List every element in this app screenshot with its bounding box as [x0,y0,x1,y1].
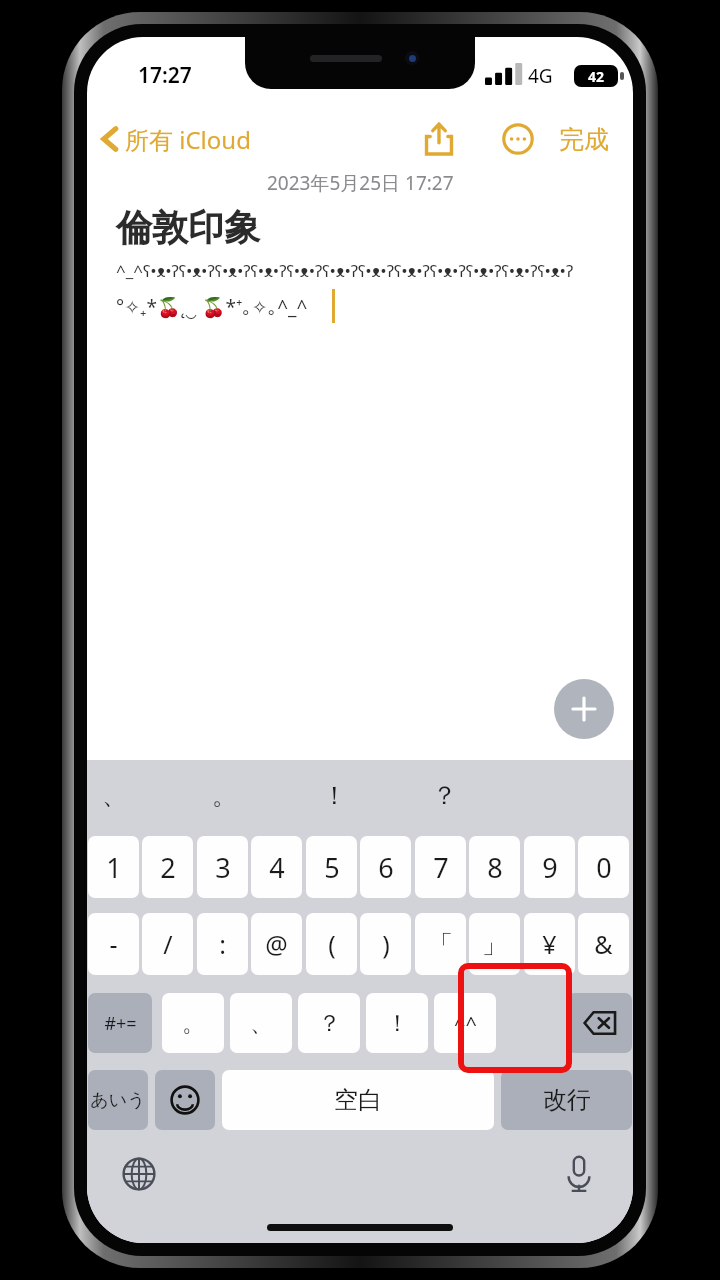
staticText: 倫敦印象 [116,205,260,250]
button[interactable]: & [578,913,629,975]
button[interactable]: 「 [415,913,466,975]
staticText: 2023年5月25日 17:27 [267,170,454,196]
button[interactable]: 改行 [501,1070,632,1130]
staticText: 6 [378,849,394,886]
button[interactable]: 7 [415,836,466,898]
staticText: ！ [322,780,347,811]
staticText: 4 [269,849,285,886]
staticText: 。 [212,780,237,811]
staticText: @ [265,927,288,961]
staticText: ¥ [542,927,557,961]
button[interactable]: : [197,913,248,975]
button[interactable]: ？ [298,993,360,1053]
button[interactable]: 0 [578,836,629,898]
staticText: & [594,927,613,961]
button[interactable]: 3 [197,836,248,898]
staticText: 5 [324,849,340,886]
button[interactable]: ！ [366,993,428,1053]
staticText: 0 [596,849,612,886]
button[interactable]: 1 [88,836,139,898]
staticText: 9 [542,849,558,886]
button[interactable]: ^^ [434,993,496,1053]
button[interactable]: ？ [417,760,472,830]
staticText: 2 [160,849,176,886]
button[interactable]: 9 [524,836,575,898]
staticText: 」 [482,929,507,960]
button[interactable]: ) [360,913,411,975]
button[interactable]: 4 [251,836,302,898]
staticText: - [109,927,118,961]
button[interactable]: 刪除 [568,993,632,1053]
button[interactable]: ( [306,913,357,975]
staticText: : [219,927,226,961]
button[interactable]: #+= [88,993,152,1053]
button[interactable]: 空白 [222,1070,494,1130]
staticText: °✧₊*🍒˛‿ 🍒*⁺｡✧｡^_^ [116,294,586,320]
staticText: 「 [428,929,453,960]
button[interactable]: 。 [197,760,252,830]
button[interactable]: 切換鍵盤 [113,1148,165,1200]
staticText: 完成 [559,124,609,155]
staticText: 1 [106,849,122,886]
staticText: 改行 [543,1085,591,1115]
button[interactable]: 分享 [417,117,461,161]
button[interactable]: 5 [306,836,357,898]
button[interactable]: 、 [87,760,142,830]
button[interactable]: あいう [88,1070,148,1130]
staticText: 。 [182,1009,205,1038]
staticText: 、 [250,1009,273,1038]
staticText: ？ [432,780,457,811]
button[interactable]: 表情符號 [155,1070,215,1130]
staticText: ^_^ʕ•ᴥ•ʔʕ•ᴥ•ʔʕ•ᴥ•ʔʕ•ᴥ•ʔʕ•ᴥ•ʔʕ•ᴥ•ʔʕ•ᴥ•ʔʕ•… [116,259,586,282]
staticText: 、 [102,780,127,811]
button[interactable]: / [142,913,193,975]
staticText: ( [328,927,336,961]
button[interactable]: 2 [142,836,193,898]
button[interactable]: 語音輸入 [553,1148,605,1200]
button[interactable]: 更多 [496,117,540,161]
staticText: ？ [318,1009,341,1038]
staticText: 3 [215,849,231,886]
staticText: 4G [528,63,553,89]
button[interactable]: 、 [230,993,292,1053]
staticText: あいう [90,1089,146,1112]
button[interactable]: ¥ [524,913,575,975]
staticText: 7 [433,849,449,886]
staticText: 42 [588,67,605,86]
staticText: #+= [104,1011,137,1036]
button[interactable]: 8 [469,836,520,898]
button[interactable]: 」 [469,913,520,975]
button[interactable]: - [88,913,139,975]
button[interactable]: @ [251,913,302,975]
button[interactable]: 完成 [559,117,609,161]
button[interactable]: 新增 [554,679,614,739]
button[interactable]: 所有 iCloud [97,115,251,163]
staticText: 空白 [334,1085,382,1115]
button[interactable]: ！ [307,760,362,830]
staticText: ！ [386,1009,409,1038]
staticText: 8 [487,849,503,886]
button[interactable]: 。 [162,993,224,1053]
staticText: 17:27 [138,61,192,90]
staticText: / [163,927,173,961]
staticText: ) [382,927,390,961]
staticText: 所有 iCloud [125,123,251,156]
button[interactable]: 6 [360,836,411,898]
staticText: ^^ [454,1010,477,1037]
